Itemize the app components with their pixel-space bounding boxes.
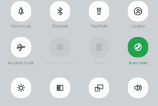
staticText: Airplane mode [8,60,34,65]
staticText: Wallet [93,60,104,65]
staticText: Flashlight [91,23,107,28]
button[interactable] [11,77,31,98]
button[interactable] [89,77,109,98]
staticText: Silent mode [11,23,31,28]
button[interactable] [89,1,109,22]
button[interactable] [11,1,31,22]
staticText: Device sharing [47,60,73,65]
staticText: Bluetooth [52,23,68,28]
staticText: Location [131,23,145,28]
button[interactable] [50,77,70,98]
staticText: Auto rotate [128,60,147,65]
button[interactable] [128,77,148,98]
button[interactable] [128,37,148,57]
button[interactable] [50,1,70,22]
button[interactable] [11,37,31,57]
button[interactable] [89,37,109,57]
button[interactable] [128,1,148,22]
button[interactable] [50,37,70,57]
